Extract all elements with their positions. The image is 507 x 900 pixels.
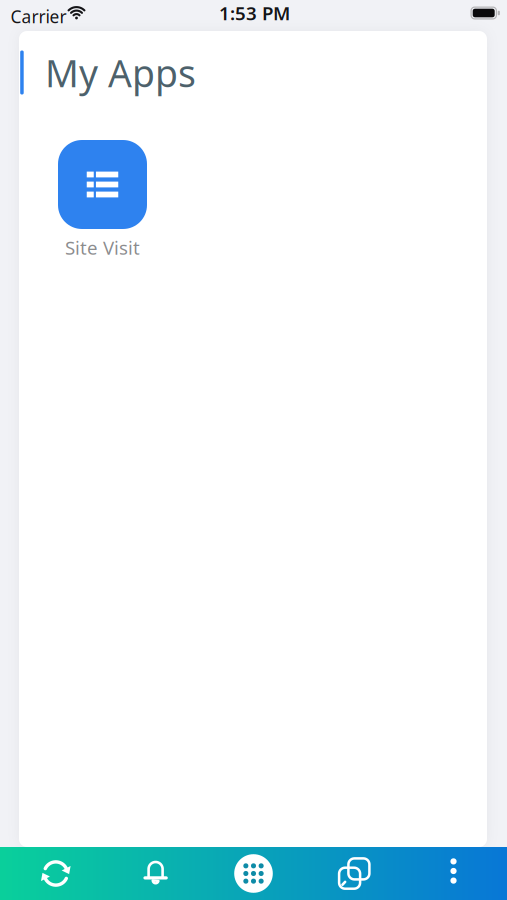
button[interactable]: Site Visit	[58, 140, 147, 260]
staticText: My Apps	[45, 48, 196, 98]
button[interactable]: More	[406, 847, 507, 900]
staticText: Carrier	[10, 5, 66, 28]
button[interactable]: Switch Apps	[304, 847, 406, 900]
button[interactable]: Sync	[0, 847, 101, 900]
button[interactable]: Apps	[203, 847, 304, 900]
staticText: Site Visit	[65, 235, 140, 260]
staticText: 1:53 PM	[219, 1, 290, 25]
button[interactable]: Notifications	[101, 847, 203, 900]
